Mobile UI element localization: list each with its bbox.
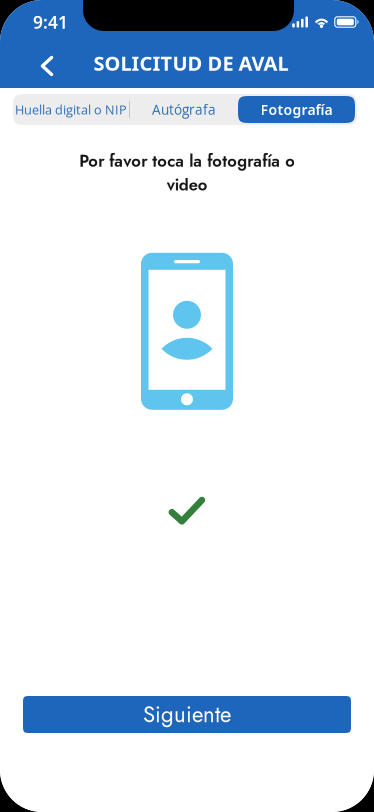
- staticText: SOLICITUD DE AVAL: [93, 49, 288, 77]
- button[interactable]: Fotografía: [238, 96, 355, 123]
- staticText: Siguiente: [143, 698, 231, 730]
- button[interactable]: Siguiente: [23, 696, 351, 733]
- button[interactable]: Autógrafa: [130, 94, 238, 125]
- button[interactable]: Huella digital o NIP: [13, 94, 129, 125]
- staticText: Por favor toca la fotografía o video: [79, 149, 295, 197]
- staticText: 9:41: [33, 10, 68, 34]
- staticText: Huella digital o NIP: [15, 101, 127, 118]
- staticText: Autógrafa: [152, 100, 216, 119]
- staticText: Fotografía: [260, 100, 332, 119]
- button[interactable]: Back: [25, 44, 69, 88]
